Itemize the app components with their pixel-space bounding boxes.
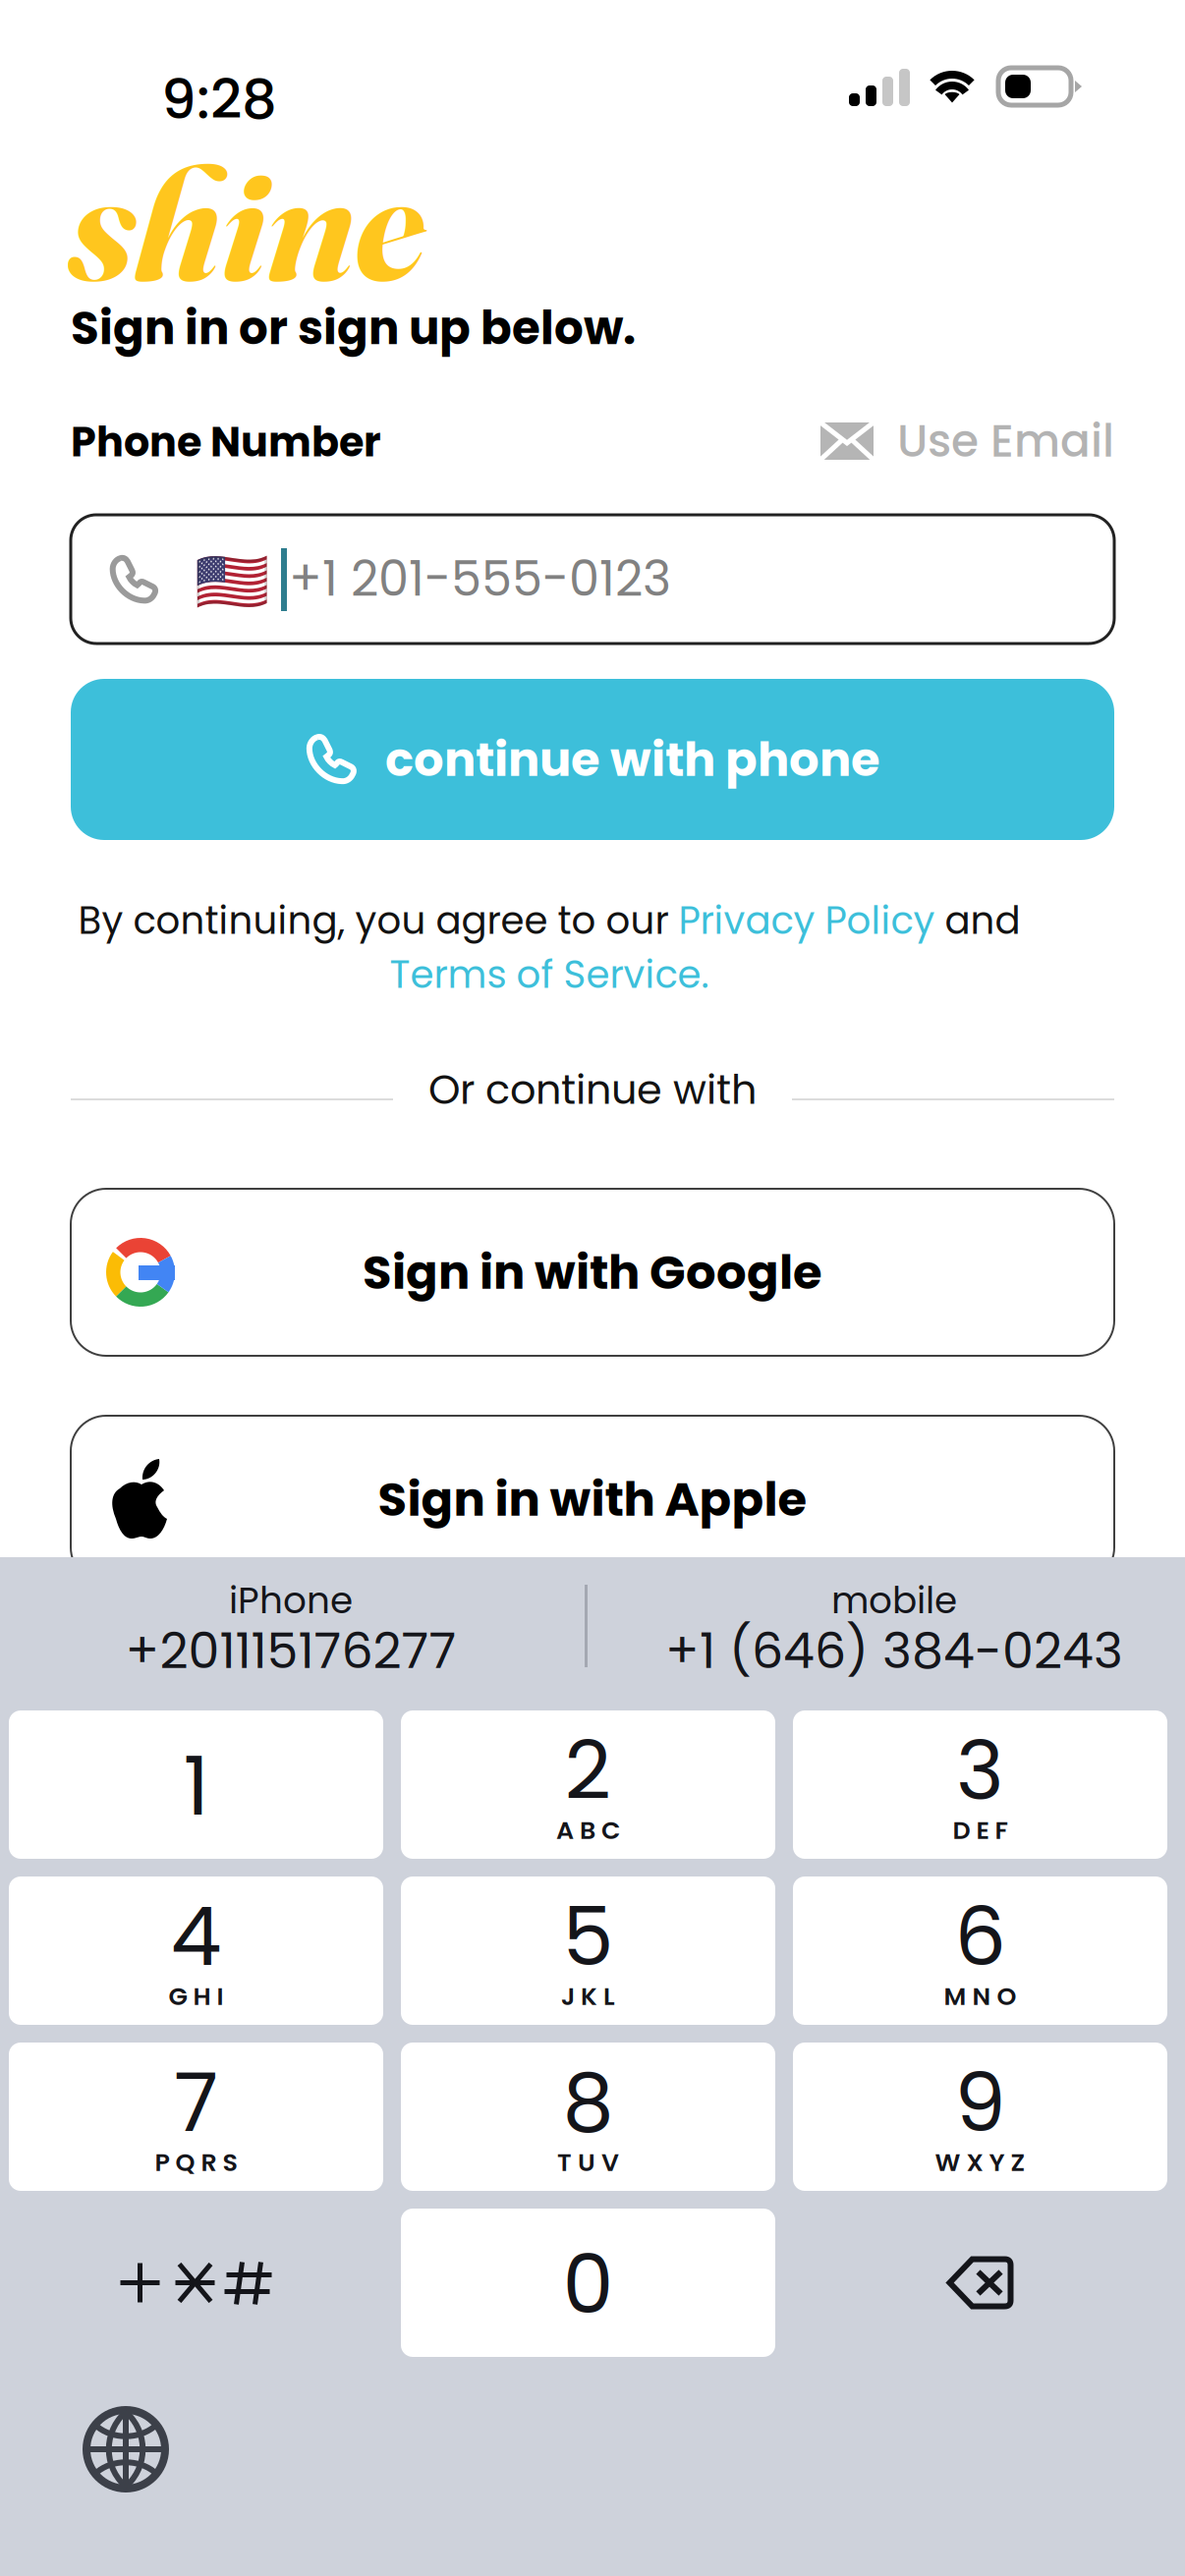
staticText: G H I xyxy=(169,1979,224,2014)
button[interactable]: Use Email xyxy=(806,411,1114,472)
staticText: Terms of Service. xyxy=(390,948,709,1001)
button[interactable]: 3 xyxy=(793,1710,1167,1859)
staticText: Use Email xyxy=(897,410,1114,472)
button[interactable]: continue with phone xyxy=(71,679,1114,840)
staticText: 4 xyxy=(170,1880,222,1993)
staticText: mobile xyxy=(831,1575,957,1626)
staticText: 1 xyxy=(183,1729,209,1843)
staticText: 🇺🇸 xyxy=(195,547,269,616)
staticText: iPhone xyxy=(229,1575,353,1626)
staticText: Sign in with Apple xyxy=(378,1466,807,1532)
staticText: 7 xyxy=(174,2046,218,2159)
button[interactable]: 6 xyxy=(793,1876,1167,2025)
staticText: and xyxy=(935,894,1020,947)
staticText: W X Y Z xyxy=(935,2145,1025,2180)
button[interactable]: Next keyboard language xyxy=(793,2209,1167,2357)
button[interactable]: Privacy Policy xyxy=(678,894,935,947)
staticText: 6 xyxy=(955,1880,1006,1993)
staticText: 9 xyxy=(955,2046,1006,2159)
staticText: T U V xyxy=(557,2145,619,2180)
staticText: M N O xyxy=(944,1979,1016,2014)
staticText: A B C xyxy=(556,1813,620,1848)
staticText: 0 xyxy=(563,2227,614,2341)
staticText: 5 xyxy=(563,1880,614,1993)
staticText: +201115176277 xyxy=(125,1616,456,1685)
button[interactable]: Sign in with Google xyxy=(71,1189,1114,1356)
staticText: 9:28 xyxy=(161,61,277,138)
staticText: +1 (646) 384-0243 xyxy=(665,1616,1123,1685)
button[interactable]: Sign in with Apple xyxy=(71,1416,1114,1583)
button[interactable]: Terms of Service. xyxy=(0,947,1142,1002)
button[interactable]: 9 xyxy=(793,2043,1167,2191)
staticText: D E F xyxy=(953,1813,1008,1848)
staticText: 2 xyxy=(564,1714,612,1827)
staticText: Privacy Policy xyxy=(678,894,935,947)
button[interactable]: 4 xyxy=(9,1876,383,2025)
staticText: By continuing, you agree to our xyxy=(78,894,678,947)
staticText: continue with phone xyxy=(385,726,880,792)
button[interactable]: 7 xyxy=(9,2043,383,2191)
staticText: Sign in or sign up below. xyxy=(71,296,636,360)
staticText: Or continue with xyxy=(428,1061,757,1118)
staticText: 3 xyxy=(956,1714,1004,1827)
button[interactable]: 8 xyxy=(401,2043,775,2191)
button[interactable]: 0 xyxy=(401,2209,775,2357)
button[interactable]: 5 xyxy=(401,1876,775,2025)
button[interactable]: 1 xyxy=(9,1710,383,1859)
button[interactable]: Symbols xyxy=(9,2209,383,2357)
staticText: Phone Number xyxy=(71,414,381,471)
button[interactable]: Switch keyboard xyxy=(86,2410,165,2489)
staticText: J K L xyxy=(561,1979,615,2014)
staticText: shine xyxy=(69,123,426,321)
staticText: 8 xyxy=(563,2046,614,2159)
staticText: +1 201-555-0123 xyxy=(289,545,671,613)
staticText: Sign in with Google xyxy=(363,1239,822,1305)
button[interactable]: 2 xyxy=(401,1710,775,1859)
staticText: P Q R S xyxy=(155,2145,237,2180)
